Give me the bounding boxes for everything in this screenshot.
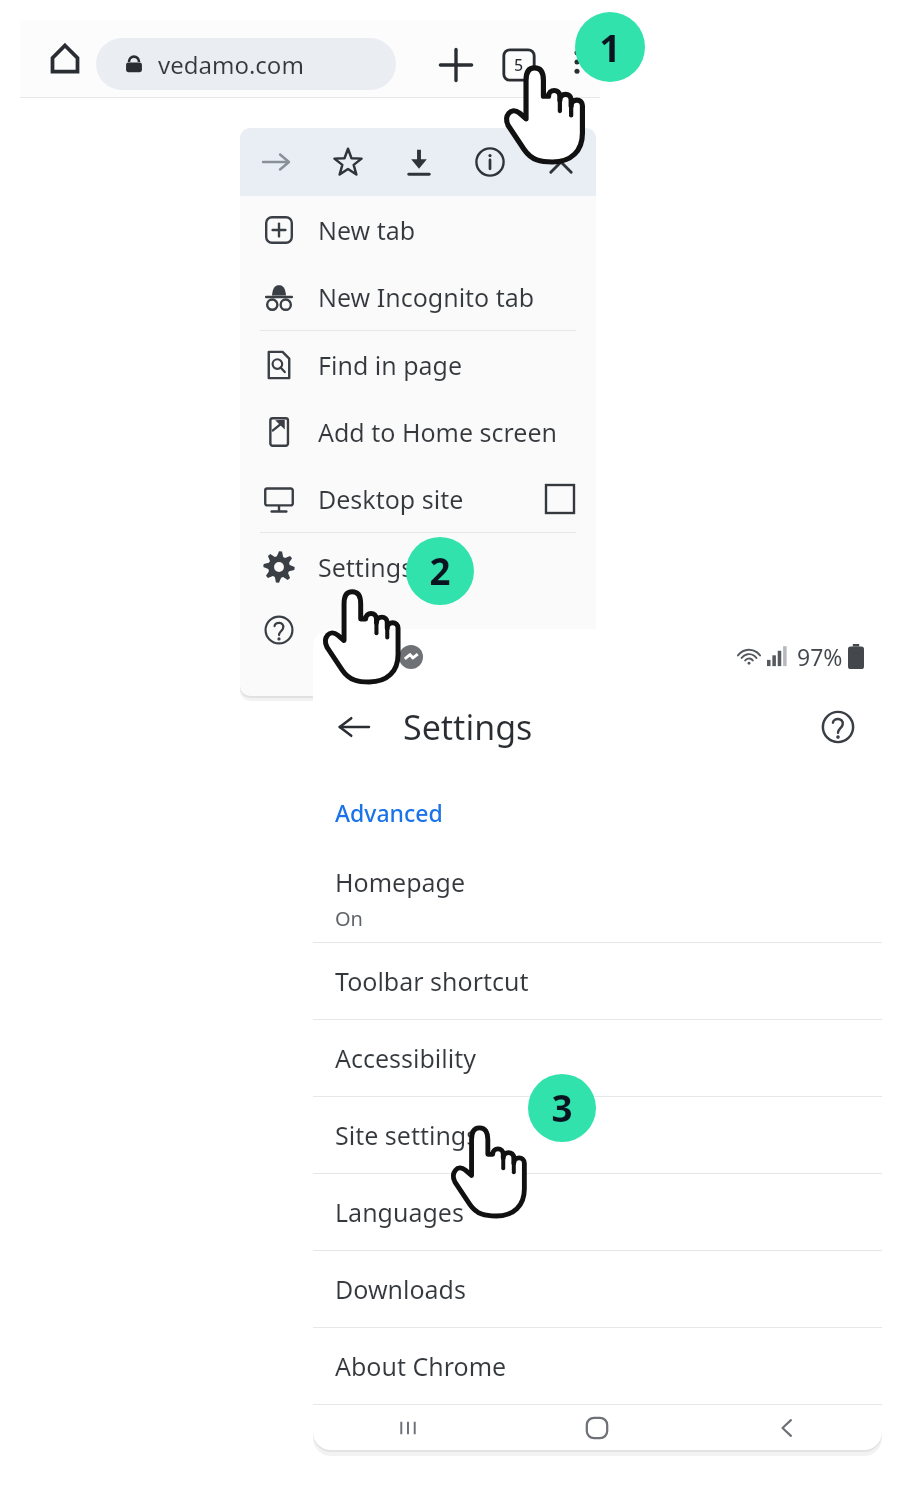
staticText: 2 [429,546,451,596]
button[interactable]: Close [525,128,596,196]
button[interactable]: New tab [240,196,596,263]
staticText: Desktop site [318,482,464,516]
staticText: 97% [797,641,843,672]
staticText: Homepage [335,865,466,899]
staticText: On [335,905,363,932]
button[interactable]: Downloads [313,1251,882,1327]
button[interactable]: Recent apps [313,1405,502,1450]
staticText: Site settings [335,1118,479,1152]
button[interactable]: Back [327,700,381,754]
button[interactable]: Site settings [313,1097,882,1173]
button[interactable]: About Chrome [313,1328,882,1404]
staticText: About Chrome [335,1349,507,1383]
button[interactable]: Settings [240,533,596,600]
button[interactable]: Find in page [240,331,596,398]
button[interactable]: Desktop site [240,465,596,532]
button[interactable]: Toolbar shortcut [313,943,882,1019]
staticText: New tab [318,213,416,247]
staticText: 3 [551,1083,573,1133]
button[interactable]: Homepage [313,854,882,942]
staticText: Add to Home screen [318,415,557,449]
button[interactable]: New Incognito tab [240,263,596,330]
button[interactable]: Back [692,1405,882,1450]
button[interactable]: Bookmark [312,128,383,196]
staticText: Settings [318,550,414,584]
button[interactable]: Accessibility [313,1020,882,1096]
button[interactable]: Forward [240,128,312,196]
button[interactable]: New tab [430,39,482,91]
staticText: New Incognito tab [318,280,535,314]
staticText: Advanced [335,797,443,828]
staticText: vedamo.com [158,48,304,81]
button[interactable]: Download [383,128,454,196]
button[interactable]: Tabs [496,42,542,88]
staticText: Find in page [318,348,463,382]
button[interactable]: Home [40,34,90,84]
staticText: Toolbar shortcut [335,964,529,998]
button[interactable]: Help [240,600,596,660]
staticText: Downloads [335,1272,466,1306]
staticText: 5 [514,54,524,76]
button[interactable]: Languages [313,1174,882,1250]
button[interactable]: Home [502,1405,692,1450]
button[interactable]: Help [812,701,864,753]
staticText: Settings [403,704,533,750]
button[interactable]: Add to Home screen [240,398,596,465]
staticText: Languages [335,1195,464,1229]
staticText: Accessibility [335,1041,476,1075]
button[interactable]: Page info [454,128,525,196]
staticText: 1 [599,22,621,73]
button[interactable]: More options [554,39,600,85]
button[interactable]: vedamo.com [96,38,396,90]
